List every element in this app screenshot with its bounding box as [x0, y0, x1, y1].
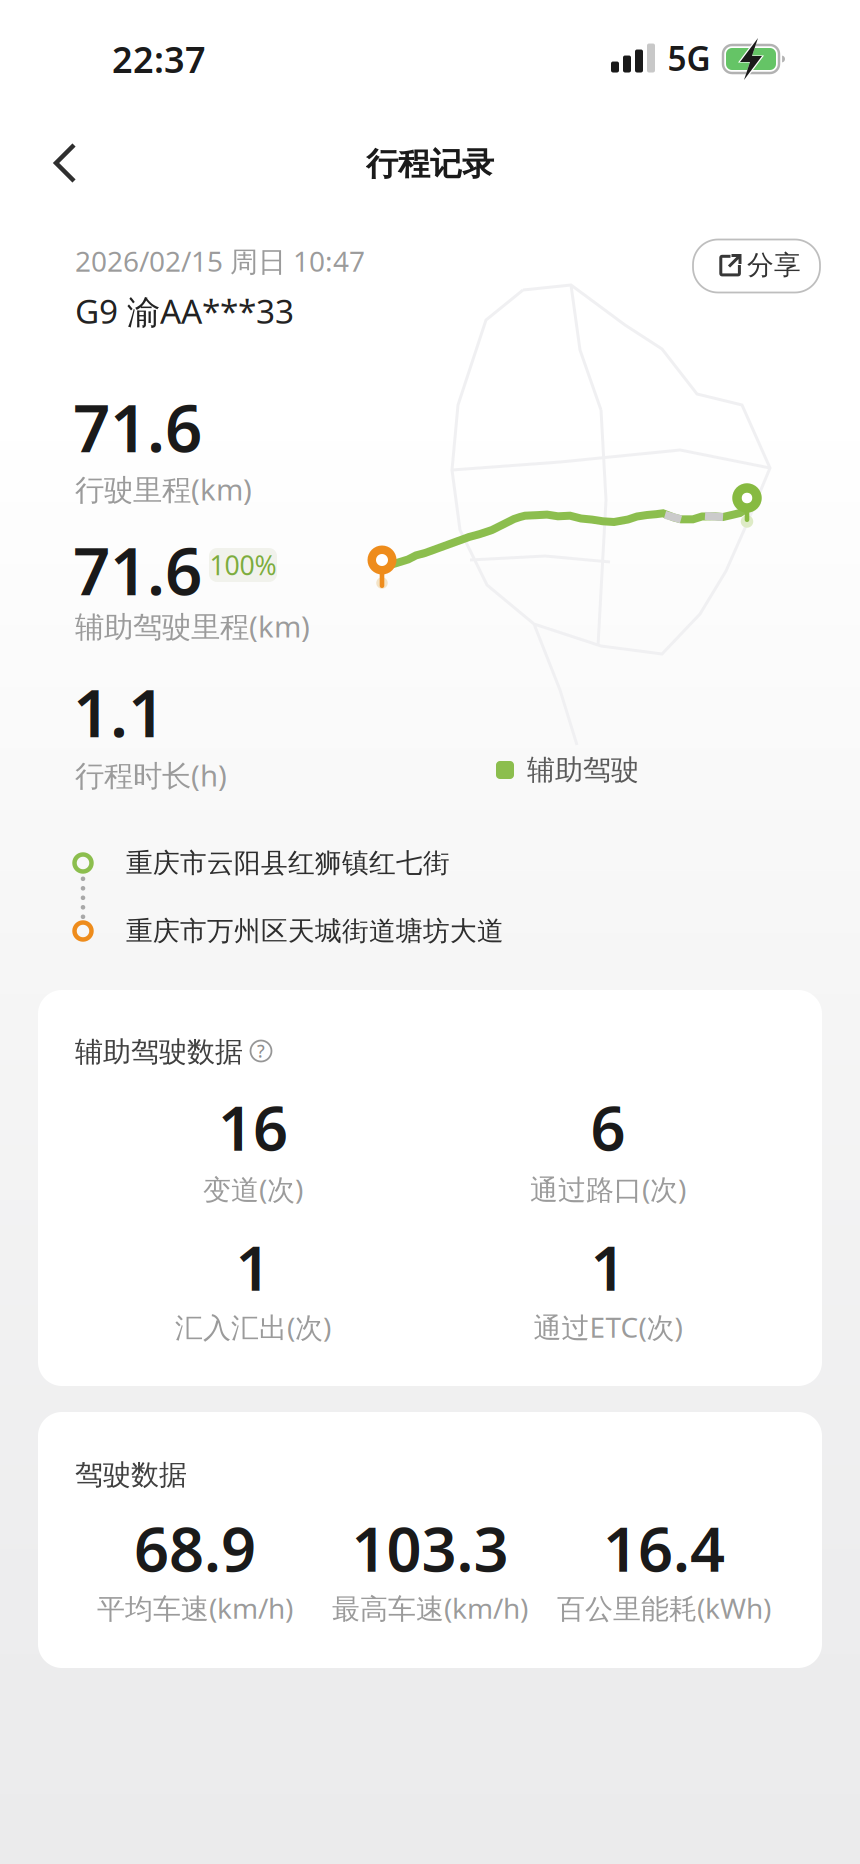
staticText: 通过路口(次) — [530, 1170, 686, 1208]
staticText: 辅助驾驶 — [527, 753, 639, 787]
staticText: 变道(次) — [203, 1170, 303, 1208]
staticText: ? — [257, 1039, 265, 1062]
staticText: 100% — [209, 547, 276, 583]
staticText: 5G — [667, 36, 710, 80]
staticText: 103.3 — [351, 1507, 508, 1589]
staticText: 辅助驾驶数据 — [75, 1035, 243, 1069]
staticText: 71.6 — [73, 527, 202, 613]
staticText: 1 — [590, 1226, 625, 1308]
staticText: 百公里能耗(kWh) — [557, 1589, 771, 1627]
staticText: 1 — [235, 1226, 270, 1308]
staticText: 重庆市万州区天城街道塘坊大道 — [126, 915, 504, 947]
staticText: 6 — [590, 1086, 625, 1168]
staticText: 行程记录 — [366, 144, 494, 184]
staticText: 分享 — [747, 249, 801, 281]
staticText: 最高车速(km/h) — [332, 1589, 528, 1627]
staticText: 71.6 — [73, 384, 202, 470]
staticText: 辅助驾驶里程(km) — [75, 606, 310, 645]
staticText: 重庆市云阳县红狮镇红七街 — [126, 847, 450, 879]
staticText: 通过ETC(次) — [533, 1308, 682, 1346]
staticText: 驾驶数据 — [75, 1458, 187, 1492]
staticText: 平均车速(km/h) — [97, 1589, 293, 1627]
staticText: 1.1 — [73, 669, 165, 755]
staticText: 16.4 — [603, 1507, 725, 1589]
staticText: 16 — [218, 1086, 288, 1168]
staticText: 2026/02/15 周日 10:47 — [75, 242, 365, 280]
staticText: G9 渝AA***33 — [75, 289, 294, 333]
staticText: 68.9 — [134, 1507, 256, 1589]
staticText: 汇入汇出(次) — [175, 1308, 331, 1346]
staticText: 行驶里程(km) — [75, 469, 252, 508]
staticText: 22:37 — [112, 35, 206, 83]
staticText: 行程时长(h) — [75, 755, 227, 794]
